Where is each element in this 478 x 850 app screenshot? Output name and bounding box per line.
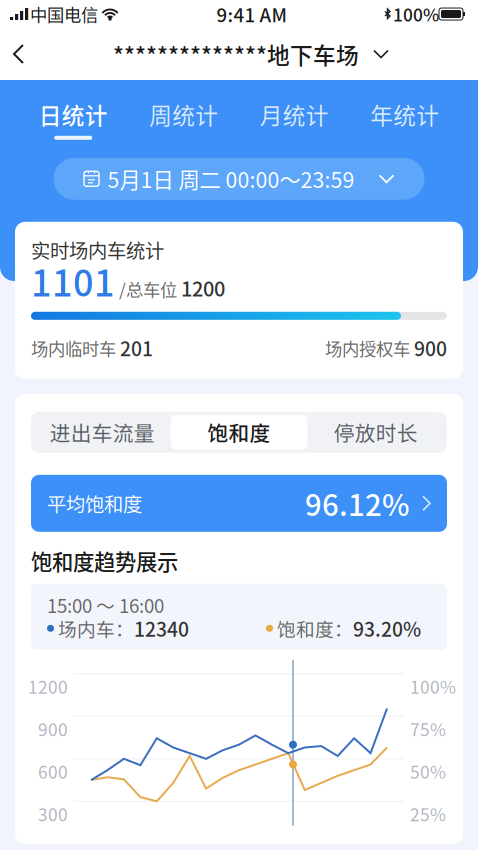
- staticText: 饱和度趋势展示: [31, 545, 178, 576]
- staticText: 600: [38, 758, 68, 784]
- staticText: **************地下车场: [113, 38, 359, 70]
- staticText: 停放时长: [334, 417, 418, 447]
- staticText: 300: [38, 801, 68, 826]
- button[interactable]: 日统计: [18, 92, 128, 146]
- staticText: 1101: [31, 255, 115, 307]
- staticText: 中国电信: [30, 1, 98, 27]
- staticText: 900: [414, 334, 447, 362]
- staticText: 饱和度: [207, 417, 270, 447]
- button[interactable]: 月统计: [239, 92, 349, 146]
- staticText: 96.12%: [305, 482, 410, 525]
- staticText: 场内临时车: [31, 335, 120, 360]
- staticText: 5月1日 周二 00:00～23:59: [107, 163, 354, 194]
- button[interactable]: 5月1日 周二 00:00～23:59: [53, 158, 424, 200]
- button[interactable]: 周统计: [128, 92, 239, 146]
- staticText: 9:41 AM: [216, 0, 286, 27]
- staticText: 饱和度：: [273, 615, 353, 642]
- button[interactable]: 饱和度: [171, 415, 307, 450]
- button[interactable]: 平均饱和度: [31, 475, 447, 532]
- staticText: /总车位: [115, 276, 181, 301]
- button[interactable]: Back: [0, 28, 38, 80]
- staticText: 900: [38, 716, 68, 741]
- staticText: 年统计: [370, 98, 439, 131]
- staticText: 进出车流量: [50, 417, 155, 447]
- staticText: 100%: [393, 1, 439, 27]
- staticText: 25%: [410, 801, 446, 826]
- staticText: 1200: [181, 273, 225, 302]
- staticText: 75%: [410, 716, 446, 741]
- staticText: 201: [120, 334, 153, 362]
- staticText: 平均饱和度: [47, 489, 142, 517]
- staticText: 实时场内车统计: [31, 236, 164, 264]
- staticText: 日统计: [39, 98, 108, 131]
- staticText: 场内车：: [54, 615, 134, 642]
- button[interactable]: 年统计: [349, 92, 460, 146]
- staticText: 1200: [28, 673, 68, 699]
- staticText: 50%: [410, 758, 446, 784]
- staticText: 15:00 ～ 16:00: [47, 591, 164, 618]
- button[interactable]: 停放时长: [307, 415, 444, 450]
- staticText: 93.20%: [353, 614, 421, 642]
- button[interactable]: Switch lot: [359, 28, 403, 80]
- staticText: 12340: [134, 614, 189, 642]
- staticText: 周统计: [149, 98, 218, 131]
- staticText: 100%: [410, 673, 456, 699]
- staticText: 场内授权车: [325, 335, 414, 360]
- button[interactable]: 进出车流量: [34, 415, 171, 450]
- staticText: 月统计: [260, 98, 329, 131]
